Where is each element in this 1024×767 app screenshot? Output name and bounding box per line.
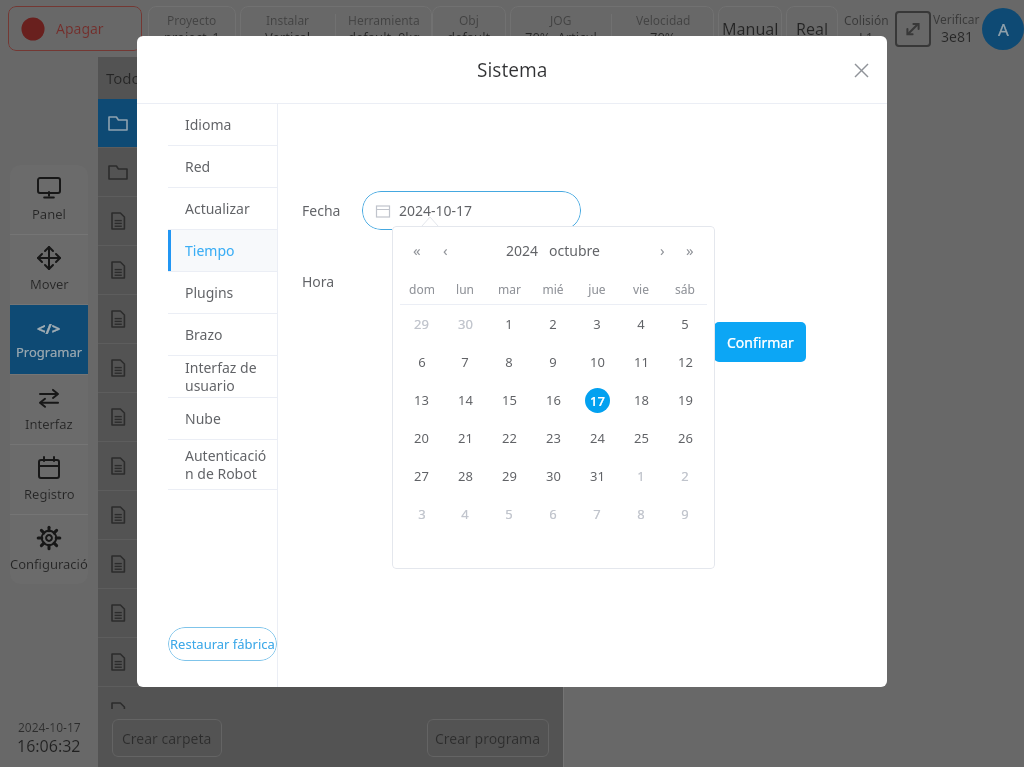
staticText: dom: [409, 281, 435, 297]
button[interactable]: 23: [531, 419, 575, 457]
staticText: default 0kg: [348, 28, 421, 46]
button[interactable]: [108, 638, 563, 686]
button[interactable]: Apagar: [8, 6, 142, 51]
staticText: Interfaz de usuario: [185, 358, 271, 395]
button[interactable]: 29: [487, 457, 531, 495]
button[interactable]: Crear carpeta: [112, 719, 222, 757]
staticText: 12: [678, 353, 693, 371]
button[interactable]: 9: [663, 495, 707, 533]
staticText: 26: [678, 429, 693, 447]
button[interactable]: 11: [619, 343, 663, 381]
button[interactable]: Registro: [10, 445, 88, 514]
button[interactable]: 31: [575, 457, 619, 495]
button[interactable]: JOG: [510, 6, 714, 51]
button[interactable]: [108, 99, 563, 147]
button[interactable]: 29: [400, 305, 443, 343]
button[interactable]: [108, 197, 563, 245]
button[interactable]: [108, 246, 563, 294]
button[interactable]: 25: [619, 419, 663, 457]
button[interactable]: [108, 344, 563, 392]
button[interactable]: 1: [619, 457, 663, 495]
button[interactable]: Proyecto: [148, 6, 236, 51]
button[interactable]: Mover: [10, 235, 88, 304]
button[interactable]: 24: [575, 419, 619, 457]
button[interactable]: 1: [487, 305, 531, 343]
button[interactable]: 21: [443, 419, 487, 457]
staticText: 11: [634, 353, 649, 371]
button[interactable]: 16: [531, 381, 575, 419]
button[interactable]: 30: [443, 305, 487, 343]
button[interactable]: 22: [487, 419, 531, 457]
button[interactable]: 8: [619, 495, 663, 533]
button[interactable]: 7: [575, 495, 619, 533]
button[interactable]: </>: [10, 305, 88, 374]
button[interactable]: Red: [168, 146, 277, 187]
button[interactable]: Real: [786, 6, 838, 51]
button[interactable]: Tiempo: [168, 230, 277, 271]
button[interactable]: Obj: [432, 6, 506, 51]
button[interactable]: 18: [619, 381, 663, 419]
button[interactable]: [108, 295, 563, 343]
button[interactable]: Autenticación de Robot: [168, 440, 277, 489]
button[interactable]: Cerrar: [847, 56, 875, 84]
button[interactable]: 20: [400, 419, 443, 457]
button[interactable]: 5: [487, 495, 531, 533]
staticText: Red: [185, 157, 211, 176]
button[interactable]: 14: [443, 381, 487, 419]
button[interactable]: 28: [443, 457, 487, 495]
button[interactable]: 12: [663, 343, 707, 381]
button[interactable]: [108, 589, 563, 637]
button[interactable]: Restaurar fábrica: [168, 627, 277, 661]
button[interactable]: 26: [663, 419, 707, 457]
button[interactable]: 13: [400, 381, 443, 419]
button[interactable]: 3: [400, 495, 443, 533]
button[interactable]: 27: [400, 457, 443, 495]
staticText: 24: [590, 429, 605, 447]
button[interactable]: 2: [531, 305, 575, 343]
staticText: 2024-10-17: [399, 201, 473, 220]
button[interactable]: 8: [487, 343, 531, 381]
button[interactable]: 30: [531, 457, 575, 495]
button[interactable]: [108, 491, 563, 539]
button[interactable]: 3: [575, 305, 619, 343]
button[interactable]: 17: [575, 381, 619, 419]
button[interactable]: Expandir: [895, 11, 931, 47]
button[interactable]: 2024-10-17: [376, 191, 581, 230]
button[interactable]: 5: [663, 305, 707, 343]
button[interactable]: Mes anterior: [434, 239, 456, 261]
button[interactable]: 10: [575, 343, 619, 381]
button[interactable]: 4: [619, 305, 663, 343]
button[interactable]: 6: [400, 343, 443, 381]
button[interactable]: Actualizar: [168, 188, 277, 229]
button[interactable]: Configuración: [10, 515, 88, 584]
button[interactable]: Brazo: [168, 314, 277, 355]
button[interactable]: [108, 393, 563, 441]
button[interactable]: Idioma: [168, 104, 277, 145]
staticText: Vertical: [265, 28, 311, 46]
button[interactable]: Mes siguiente: [651, 239, 673, 261]
button[interactable]: Manual: [718, 6, 782, 51]
button[interactable]: Crear programa: [427, 719, 549, 757]
button[interactable]: 15: [487, 381, 531, 419]
button[interactable]: 4: [443, 495, 487, 533]
button[interactable]: 2: [663, 457, 707, 495]
button[interactable]: A: [982, 8, 1024, 50]
button[interactable]: [108, 148, 563, 196]
button[interactable]: Año anterior: [406, 239, 428, 261]
button[interactable]: [108, 442, 563, 490]
button[interactable]: Confirmar: [714, 322, 806, 362]
button[interactable]: 9: [531, 343, 575, 381]
button[interactable]: 19: [663, 381, 707, 419]
button[interactable]: Año siguiente: [679, 239, 701, 261]
button[interactable]: [108, 540, 563, 588]
button[interactable]: 6: [531, 495, 575, 533]
button[interactable]: Plugins: [168, 272, 277, 313]
button[interactable]: 7: [443, 343, 487, 381]
button[interactable]: Panel: [10, 165, 88, 234]
staticText: «: [413, 240, 421, 260]
button[interactable]: Interfaz: [10, 375, 88, 444]
button[interactable]: Interfaz de usuario: [168, 356, 277, 397]
button[interactable]: Nube: [168, 398, 277, 439]
button[interactable]: Instalar: [240, 6, 432, 51]
